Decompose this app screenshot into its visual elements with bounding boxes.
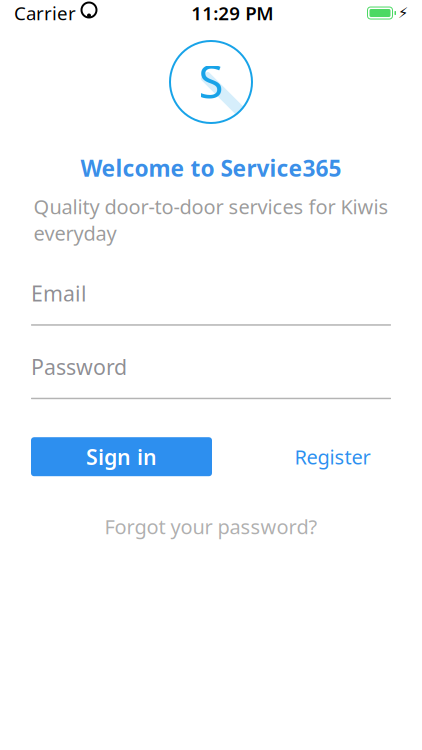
staticText: Carrier: [14, 1, 76, 25]
staticText: S: [198, 51, 223, 111]
button[interactable]: Sign in: [31, 437, 212, 476]
staticText: Email: [31, 279, 87, 307]
staticText: Sign in: [86, 443, 157, 471]
button[interactable]: Register: [274, 437, 391, 476]
staticText: Quality door-to-door services for Kiwis …: [33, 193, 388, 246]
staticText: Forgot your password?: [104, 513, 317, 540]
button[interactable]: Forgot your password?: [31, 505, 391, 548]
staticText: Register: [294, 443, 370, 470]
staticText: ⚡︎: [398, 5, 408, 21]
staticText: 11:29 PM: [191, 1, 273, 25]
staticText: Welcome to Service365: [80, 153, 341, 183]
staticText: Password: [31, 353, 127, 381]
